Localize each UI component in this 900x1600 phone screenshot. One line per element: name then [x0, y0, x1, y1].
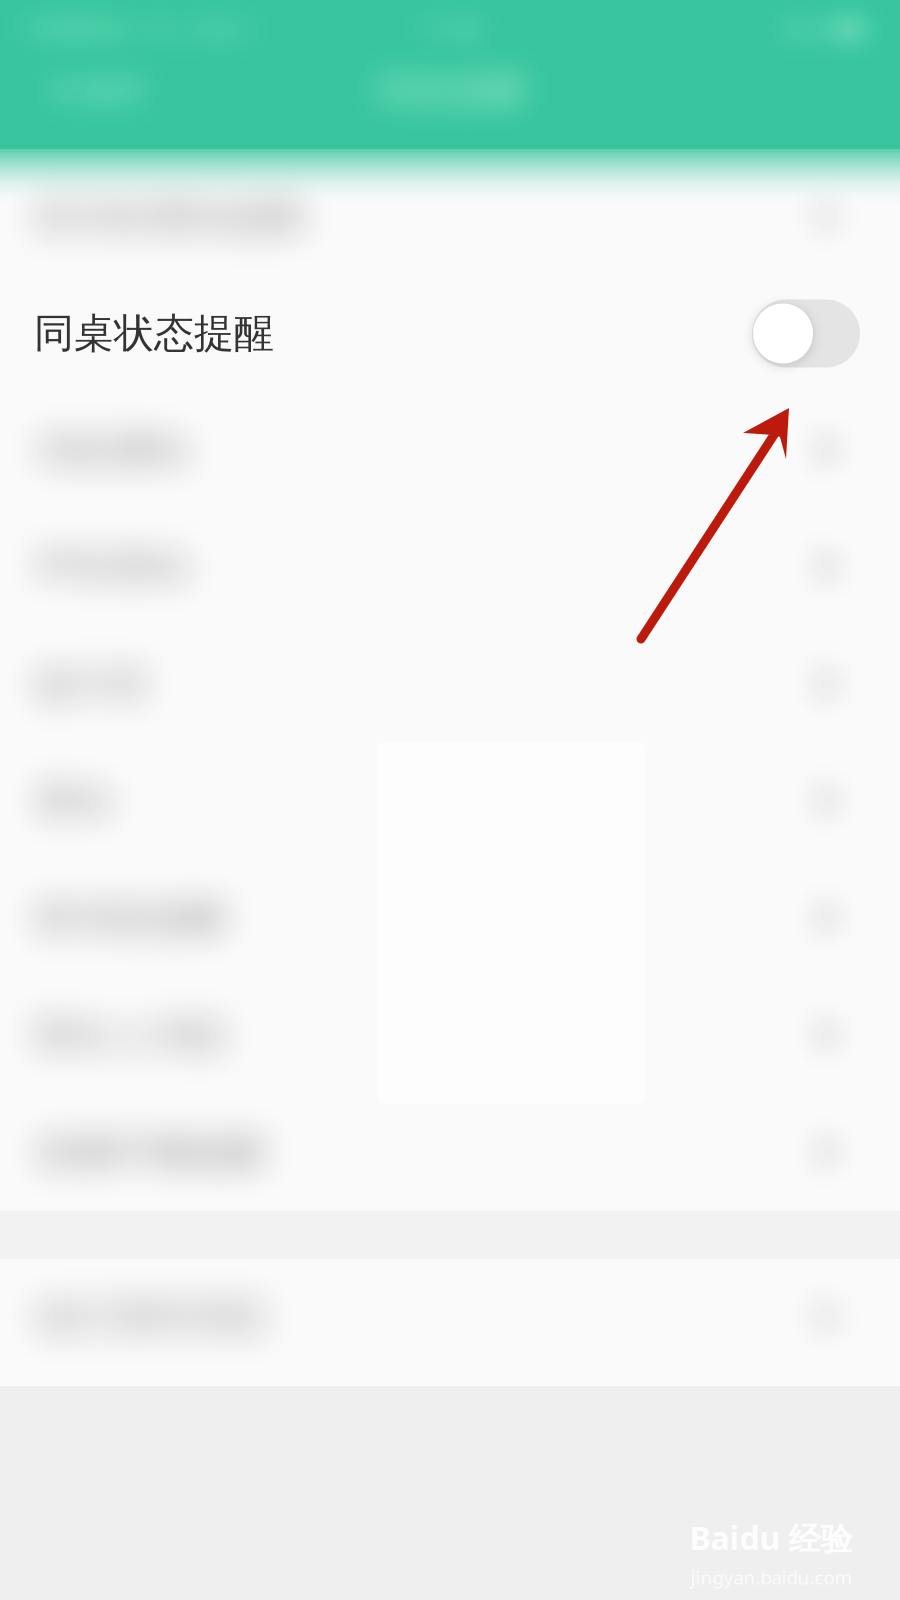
button[interactable]: 提示音	[0, 626, 900, 743]
staticText: jingyan.baidu.com	[690, 1565, 851, 1590]
button[interactable]: 震动	[0, 743, 900, 860]
button[interactable]: 免打扰时间段	[0, 1259, 900, 1376]
button[interactable]: 陌生人消息	[0, 977, 900, 1094]
button[interactable]: 声音震动	[0, 509, 900, 626]
button[interactable]: 消息通知	[0, 392, 900, 509]
button[interactable]: 返回	[52, 57, 172, 123]
button[interactable]: 群消息提醒	[0, 860, 900, 977]
button[interactable]: 同桌状态提醒	[0, 275, 900, 392]
button[interactable]: 新消息通知提醒	[0, 158, 900, 275]
button[interactable]: 直播开播提醒	[0, 1094, 900, 1211]
staticText: Baidu 经验	[689, 1516, 852, 1559]
staticText: 同桌状态提醒	[34, 309, 274, 358]
